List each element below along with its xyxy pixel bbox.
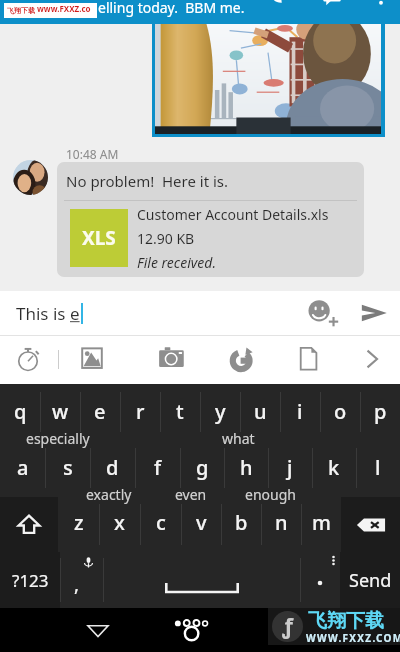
button[interactable]: Send	[340, 552, 400, 608]
staticText: m	[312, 509, 331, 536]
staticText: a	[17, 454, 29, 481]
staticText: r	[136, 398, 145, 425]
button[interactable]: b	[221, 497, 261, 552]
button[interactable]: r	[120, 384, 160, 440]
staticText: e	[70, 302, 80, 325]
button[interactable]: Back	[80, 612, 116, 648]
button[interactable]: ?123	[0, 552, 60, 608]
staticText: This is	[16, 302, 70, 325]
button[interactable]: No problem! Here it is.	[57, 162, 364, 277]
staticText: z	[74, 509, 84, 536]
staticText: y	[215, 398, 226, 425]
staticText: d	[106, 454, 119, 481]
button[interactable]: k	[312, 440, 356, 497]
button[interactable]: p	[360, 384, 400, 440]
button[interactable]: Glympse	[228, 345, 256, 373]
staticText: Send	[349, 568, 392, 593]
button[interactable]: Comma and voice input	[60, 552, 103, 608]
button[interactable]: Shift	[0, 497, 58, 552]
staticText: Customer Account Details.xls	[137, 205, 329, 224]
staticText: No problem! Here it is.	[66, 171, 229, 191]
button[interactable]: Send message	[358, 297, 390, 329]
button[interactable]: v	[181, 497, 221, 552]
button[interactable]: Attach file	[294, 345, 322, 373]
staticText: u	[254, 398, 267, 425]
staticText: XLS	[82, 225, 116, 251]
staticText: 飞翔下载	[7, 6, 35, 15]
button[interactable]: w	[40, 384, 80, 440]
staticText: WWW.FXXZ.COM	[306, 631, 400, 645]
button[interactable]: g	[180, 440, 224, 497]
button[interactable]: y	[200, 384, 240, 440]
button[interactable]: e	[80, 384, 120, 440]
staticText: 10:48 AM	[66, 146, 119, 162]
staticText: ƒ	[282, 612, 293, 641]
button[interactable]: n	[261, 497, 301, 552]
button[interactable]: t	[160, 384, 200, 440]
button[interactable]: Period and symbols	[300, 552, 340, 608]
staticText: especially	[26, 429, 90, 448]
staticText: b	[235, 509, 248, 536]
staticText: p	[374, 398, 387, 425]
button[interactable]: a	[0, 440, 45, 497]
button[interactable]: q	[0, 384, 40, 440]
button[interactable]: Home	[170, 608, 224, 652]
staticText: File received.	[137, 253, 216, 272]
staticText: q	[14, 398, 27, 425]
staticText: www.FXXZ.com	[37, 3, 97, 18]
staticText: exactly	[86, 485, 132, 504]
button[interactable]: x	[99, 497, 140, 552]
staticText: e	[94, 398, 106, 425]
button[interactable]: Timer	[14, 345, 42, 373]
button[interactable]: j	[268, 440, 312, 497]
button[interactable]: s	[45, 440, 90, 497]
button[interactable]: h	[224, 440, 268, 497]
button[interactable]: Chat	[320, 0, 346, 9]
button[interactable]: Gallery	[78, 345, 106, 373]
button[interactable]: Add emoticon	[304, 295, 340, 331]
button[interactable]: i	[280, 384, 320, 440]
staticText: elling today. BBM me.	[98, 0, 245, 17]
button[interactable]: f	[135, 440, 180, 497]
button[interactable]: Camera	[158, 345, 186, 373]
button[interactable]: More options	[358, 345, 386, 373]
staticText: what	[222, 429, 255, 448]
staticText: c	[156, 509, 166, 536]
staticText: x	[114, 509, 125, 536]
staticText: f	[154, 454, 162, 481]
button[interactable]: Space	[103, 552, 300, 608]
staticText: enough	[245, 485, 296, 504]
staticText: v	[196, 509, 207, 536]
staticText: 飞翔下载	[308, 609, 384, 633]
staticText: g	[196, 454, 209, 481]
button[interactable]	[155, 24, 381, 134]
staticText: even	[175, 485, 207, 504]
staticText: j	[287, 454, 293, 481]
button[interactable]: d	[90, 440, 135, 497]
button[interactable]: z	[58, 497, 99, 552]
button[interactable]: Call	[264, 0, 290, 9]
button[interactable]: l	[356, 440, 400, 497]
staticText: l	[375, 454, 381, 481]
staticText: h	[240, 454, 253, 481]
button[interactable]: o	[320, 384, 360, 440]
staticText: t	[176, 398, 184, 425]
button[interactable]: u	[240, 384, 280, 440]
staticText: ?123	[12, 569, 49, 592]
staticText: n	[275, 509, 288, 536]
button[interactable]: m	[301, 497, 341, 552]
staticText: k	[328, 454, 340, 481]
button[interactable]: c	[140, 497, 181, 552]
staticText: w	[52, 398, 69, 425]
button[interactable]: More options	[368, 0, 394, 9]
staticText: ,	[74, 571, 80, 597]
staticText: o	[334, 398, 347, 425]
staticText: s	[63, 454, 73, 481]
staticText: i	[297, 398, 303, 425]
staticText: 12.90 KB	[137, 229, 195, 248]
button[interactable]: Backspace	[341, 497, 400, 552]
